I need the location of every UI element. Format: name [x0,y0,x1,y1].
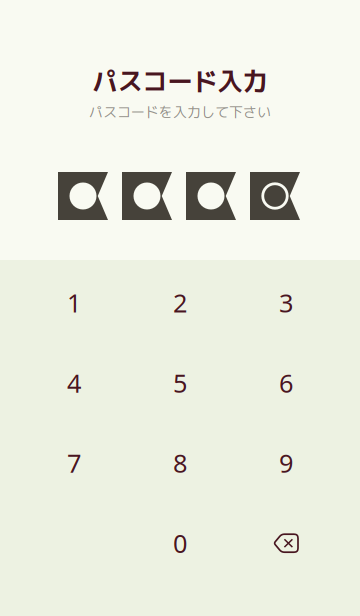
staticText: 9 [279,446,293,480]
staticText: 3 [279,286,293,319]
button[interactable]: 5 [132,346,228,420]
button[interactable]: 3 [238,266,334,340]
button[interactable]: 2 [132,266,228,340]
button[interactable]: 0 [132,506,228,580]
staticText: 5 [173,366,187,400]
button[interactable]: 6 [238,346,334,420]
button[interactable]: 4 [26,346,122,420]
staticText: 8 [173,446,187,480]
staticText: 1 [67,286,81,319]
button[interactable]: 7 [26,426,122,500]
staticText: 7 [67,446,81,480]
staticText: 6 [279,366,293,400]
staticText: パスコードを入力して下さい [89,102,271,122]
staticText: 2 [173,286,187,319]
staticText: 0 [173,526,187,560]
staticText: 4 [67,366,81,400]
button[interactable]: 8 [132,426,228,500]
staticText: パスコード入力 [92,63,267,99]
button[interactable]: Delete [238,506,334,580]
button[interactable]: 9 [238,426,334,500]
button[interactable]: 1 [26,266,122,340]
